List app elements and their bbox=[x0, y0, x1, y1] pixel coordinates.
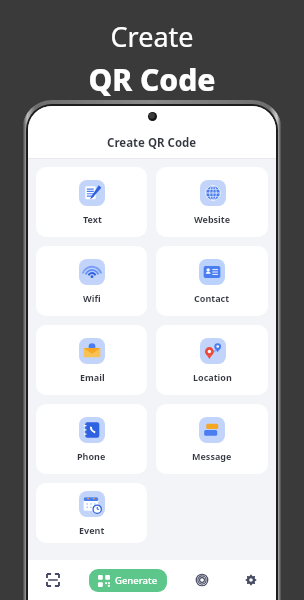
staticText: Contact bbox=[194, 292, 230, 304]
button[interactable]: Location bbox=[156, 325, 268, 395]
staticText: Wifi bbox=[83, 292, 101, 304]
button[interactable]: Text bbox=[36, 167, 147, 237]
staticText: QR Code bbox=[88, 59, 216, 100]
staticText: Generate bbox=[115, 574, 158, 587]
button[interactable]: Email bbox=[36, 325, 147, 395]
button[interactable]: Message bbox=[156, 404, 268, 474]
button[interactable]: Website bbox=[156, 167, 268, 237]
button[interactable]: Generate bbox=[89, 569, 167, 592]
staticText: Create QR Code bbox=[107, 135, 197, 151]
button[interactable]: Contact bbox=[156, 246, 268, 316]
staticText: Text bbox=[83, 213, 102, 225]
staticText: Email bbox=[80, 371, 105, 383]
button[interactable]: Scan bbox=[40, 567, 66, 593]
staticText: Location bbox=[193, 371, 232, 383]
staticText: Event bbox=[79, 524, 105, 536]
staticText: Phone bbox=[77, 450, 106, 462]
button[interactable]: Wifi bbox=[36, 246, 147, 316]
staticText: Message bbox=[192, 450, 232, 462]
staticText: Website bbox=[194, 213, 231, 225]
button[interactable]: History bbox=[189, 567, 215, 593]
button[interactable]: Settings bbox=[238, 567, 264, 593]
button[interactable]: Event bbox=[36, 483, 147, 543]
button[interactable]: Phone bbox=[36, 404, 147, 474]
staticText: Create bbox=[110, 18, 194, 55]
